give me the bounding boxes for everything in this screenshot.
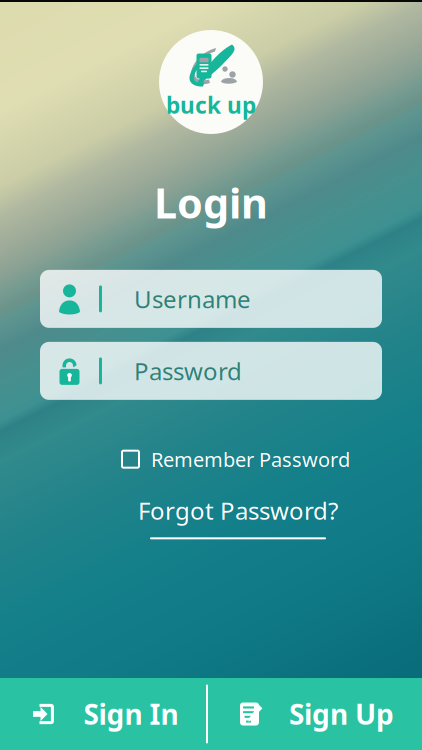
button[interactable]: Remember Password bbox=[122, 442, 350, 476]
button[interactable]: Forgot Password? bbox=[138, 494, 338, 539]
staticText: Forgot Password? bbox=[138, 494, 338, 526]
staticText: Sign In bbox=[83, 695, 178, 733]
staticText: Login bbox=[154, 175, 268, 230]
button[interactable]: Username bbox=[40, 270, 382, 328]
staticText: Remember Password bbox=[151, 446, 350, 472]
button[interactable]: Sign Up bbox=[211, 678, 422, 750]
staticText: Sign Up bbox=[289, 695, 394, 733]
staticText: Username bbox=[134, 283, 251, 315]
button[interactable]: Password bbox=[40, 342, 382, 400]
staticText: buck up bbox=[166, 90, 256, 120]
button[interactable]: Sign In bbox=[0, 678, 211, 750]
staticText: Password bbox=[134, 355, 242, 387]
